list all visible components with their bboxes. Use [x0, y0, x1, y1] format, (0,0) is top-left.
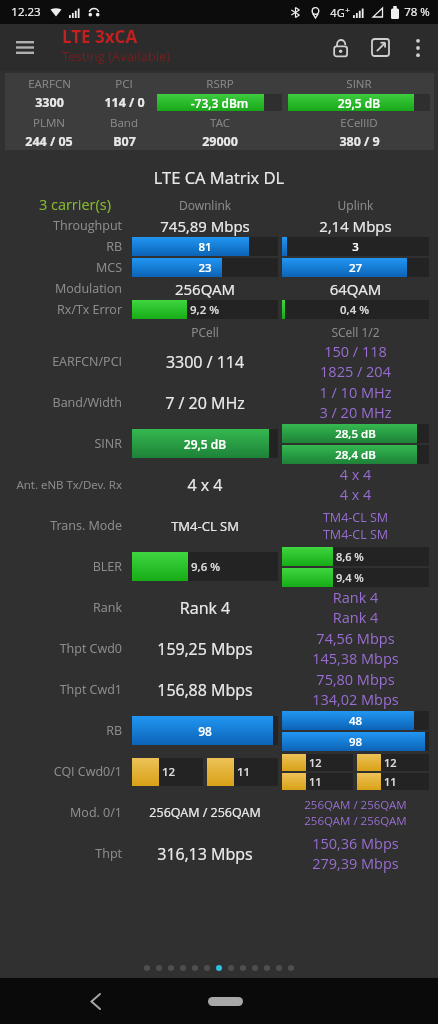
- staticText: LTE 3xCA: [62, 25, 138, 48]
- staticText: Uplink: [282, 197, 429, 213]
- staticText: SCell 1/2: [282, 324, 429, 340]
- staticText: TM4-CL SM: [282, 509, 429, 526]
- staticText: 12: [162, 764, 176, 780]
- staticText: Ant. eNB Tx/Dev. Rx: [0, 477, 122, 493]
- staticText: Band/Width: [0, 394, 122, 411]
- staticText: 12: [309, 755, 322, 770]
- staticText: 256QAM / 256QAM: [282, 797, 429, 813]
- staticText: 3 carrier(s): [0, 195, 111, 215]
- staticText: 12: [384, 755, 397, 770]
- staticText: B07: [113, 133, 136, 150]
- staticText: 3: [282, 239, 429, 255]
- staticText: Modulation: [0, 280, 122, 297]
- staticText: 145,38 Mbps: [282, 649, 429, 669]
- staticText: Rank 4: [282, 588, 429, 608]
- staticText: BLER: [0, 558, 122, 575]
- staticText: 81: [132, 239, 278, 255]
- staticText: 380 / 9: [339, 133, 380, 150]
- staticText: RB: [0, 722, 122, 739]
- staticText: TM4-CL SM: [132, 517, 278, 535]
- staticText: 4 x 4: [282, 465, 429, 485]
- staticText: EARFCN/PCI: [0, 353, 122, 370]
- staticText: 74,56 Mbps: [282, 629, 429, 649]
- staticText: 11: [309, 774, 322, 789]
- staticText: 4 x 4: [132, 474, 278, 496]
- staticText: SINR: [0, 435, 122, 452]
- staticText: RB: [0, 238, 122, 255]
- staticText: TM4-CL SM: [282, 526, 429, 543]
- staticText: Thpt: [0, 845, 122, 862]
- staticText: PCI: [115, 76, 133, 92]
- button[interactable]: Back: [75, 981, 115, 1021]
- staticText: Thpt Cwd0: [0, 640, 122, 657]
- staticText: Rank 4: [132, 597, 278, 619]
- staticText: 75,80 Mbps: [282, 670, 429, 690]
- staticText: 28,5 dB: [282, 426, 429, 442]
- staticText: 256QAM / 256QAM: [132, 804, 278, 821]
- staticText: 150,36 Mbps: [282, 834, 429, 854]
- staticText: 4 x 4: [282, 485, 429, 505]
- staticText: 29,5 dB: [132, 436, 278, 452]
- staticText: RSRP: [206, 76, 234, 92]
- staticText: Trans. Mode: [0, 517, 122, 534]
- staticText: SINR: [346, 76, 372, 92]
- button[interactable]: More options: [398, 24, 438, 71]
- staticText: 11: [384, 774, 397, 789]
- staticText: Band: [110, 115, 138, 131]
- staticText: 9,4 %: [336, 570, 364, 585]
- staticText: Rank: [0, 599, 122, 616]
- staticText: 316,13 Mbps: [132, 843, 278, 865]
- staticText: 150 / 118: [282, 342, 429, 362]
- staticText: +: [345, 4, 350, 15]
- button[interactable]: Menu: [0, 24, 50, 71]
- staticText: 3300: [35, 94, 64, 111]
- staticText: 279,39 Mbps: [282, 854, 429, 874]
- staticText: 159,25 Mbps: [132, 638, 278, 660]
- staticText: 2,14 Mbps: [282, 216, 429, 236]
- staticText: PLMN: [33, 115, 65, 131]
- staticText: ECellID: [340, 115, 378, 131]
- staticText: 4G: [330, 5, 345, 20]
- staticText: 256QAM / 256QAM: [282, 813, 429, 829]
- staticText: 12.23: [11, 4, 41, 20]
- staticText: 0,4 %: [340, 302, 370, 318]
- staticText: Thpt Cwd1: [0, 681, 122, 698]
- staticText: 23: [132, 260, 278, 276]
- staticText: 11: [237, 764, 251, 780]
- staticText: 244 / 05: [25, 133, 73, 150]
- staticText: 3 / 20 MHz: [282, 403, 429, 423]
- staticText: 9,2 %: [190, 302, 220, 318]
- staticText: Testing (Available): [62, 47, 171, 65]
- staticText: Rank 4: [282, 608, 429, 628]
- staticText: 7 / 20 MHz: [132, 392, 278, 414]
- staticText: 64QAM: [282, 279, 429, 299]
- staticText: 48: [282, 713, 429, 729]
- staticText: -73,3 dBm: [157, 95, 282, 111]
- staticText: 27: [282, 260, 429, 276]
- staticText: 29,5 dB: [288, 95, 430, 111]
- staticText: EARFCN: [28, 76, 71, 92]
- staticText: LTE CA Matrix DL: [0, 166, 438, 188]
- staticText: Downlink: [132, 197, 278, 213]
- staticText: MCS: [0, 259, 122, 276]
- staticText: 98: [132, 723, 278, 739]
- button[interactable]: Open in new: [362, 24, 398, 71]
- staticText: Mod. 0/1: [0, 804, 122, 821]
- staticText: 1825 / 204: [282, 362, 429, 382]
- staticText: 8,6 %: [336, 549, 364, 564]
- staticText: CQI Cwd0/1: [0, 763, 122, 780]
- staticText: 156,88 Mbps: [132, 679, 278, 701]
- button[interactable]: Lock: [319, 24, 362, 71]
- staticText: 134,02 Mbps: [282, 690, 429, 710]
- staticText: 256QAM: [132, 279, 278, 299]
- staticText: 28,4 dB: [282, 447, 429, 463]
- staticText: 1 / 10 MHz: [282, 383, 429, 403]
- staticText: Throughput: [0, 217, 122, 234]
- staticText: 9,6 %: [191, 559, 221, 575]
- staticText: 114 / 0: [104, 94, 145, 111]
- staticText: 98: [282, 734, 429, 750]
- staticText: 78 %: [404, 4, 430, 20]
- staticText: TAC: [210, 115, 230, 131]
- button[interactable]: Home: [208, 997, 243, 1006]
- staticText: 29000: [202, 133, 238, 150]
